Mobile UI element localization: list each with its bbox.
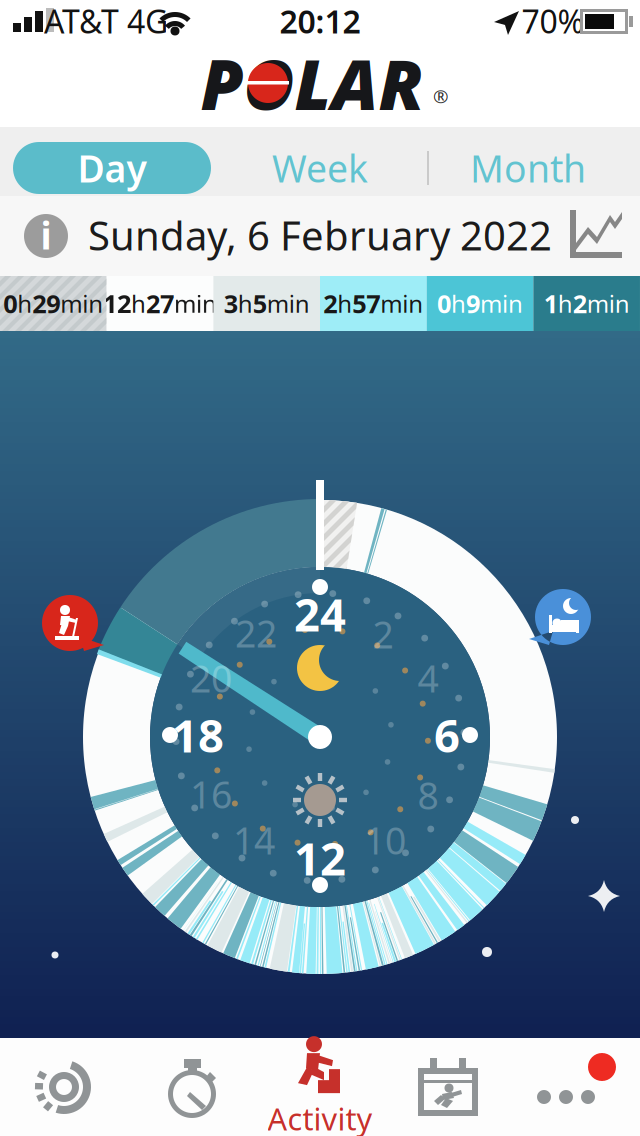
button[interactable]: 12: [107, 276, 213, 331]
staticText: 16: [190, 769, 232, 819]
staticText: h: [337, 288, 352, 319]
staticText: 2: [372, 609, 393, 659]
button[interactable]: 0: [0, 276, 107, 331]
staticText: Day: [77, 143, 146, 193]
staticText: min: [174, 288, 217, 319]
button[interactable]: 2: [320, 276, 427, 331]
button[interactable]: Activity: [256, 1038, 384, 1136]
staticText: Month: [470, 143, 586, 193]
staticText: 24: [294, 584, 346, 644]
button[interactable]: Training: [128, 1038, 256, 1136]
staticText: 3: [224, 287, 238, 320]
staticText: min: [480, 288, 523, 319]
button[interactable]: Diary: [0, 1038, 128, 1136]
staticText: min: [267, 288, 310, 319]
staticText: h: [131, 288, 146, 319]
staticText: 18: [172, 705, 224, 765]
staticText: AT&T 4G: [44, 0, 168, 42]
staticText: 10: [364, 815, 406, 865]
staticText: min: [380, 288, 423, 319]
staticText: Week: [272, 143, 368, 193]
staticText: 29: [32, 287, 60, 320]
button[interactable]: 0: [427, 276, 533, 331]
staticText: 27: [146, 287, 174, 320]
button[interactable]: 1: [533, 276, 640, 331]
button[interactable]: Exercise: [40, 593, 106, 653]
staticText: min: [587, 288, 630, 319]
staticText: 1: [544, 287, 558, 320]
staticText: min: [60, 288, 103, 319]
button[interactable]: Week: [225, 142, 415, 194]
staticText: POLAR: [200, 37, 423, 129]
staticText: 8: [417, 770, 438, 820]
staticText: 2: [573, 287, 587, 320]
staticText: 14: [233, 815, 275, 865]
button[interactable]: Day: [13, 142, 211, 194]
staticText: 12: [294, 828, 346, 888]
staticText: Sunday, 6 February 2022: [88, 208, 552, 261]
staticText: h: [17, 288, 32, 319]
staticText: 20: [190, 653, 232, 703]
button[interactable]: More: [512, 1038, 640, 1136]
staticText: 22: [235, 608, 277, 658]
staticText: h: [451, 288, 466, 319]
staticText: h: [238, 288, 253, 319]
button[interactable]: Sleep: [527, 587, 599, 647]
button[interactable]: Program: [384, 1038, 512, 1136]
staticText: i: [40, 210, 51, 260]
button[interactable]: Trends: [564, 204, 630, 266]
staticText: 4: [417, 653, 438, 703]
staticText: 9: [466, 287, 480, 320]
staticText: 0: [437, 287, 451, 320]
button[interactable]: 3: [213, 276, 320, 331]
staticText: h: [558, 288, 573, 319]
staticText: 70%: [521, 0, 584, 42]
staticText: 12: [103, 287, 131, 320]
staticText: 6: [434, 705, 460, 765]
button[interactable]: Information: [18, 208, 74, 264]
staticText: 5: [253, 287, 267, 320]
button[interactable]: Month: [433, 142, 623, 194]
staticText: 2: [323, 287, 337, 320]
staticText: 57: [352, 287, 380, 320]
staticText: Activity: [267, 1098, 372, 1136]
staticText: ®: [433, 84, 449, 108]
staticText: 20:12: [279, 0, 360, 42]
staticText: 0: [3, 287, 17, 320]
